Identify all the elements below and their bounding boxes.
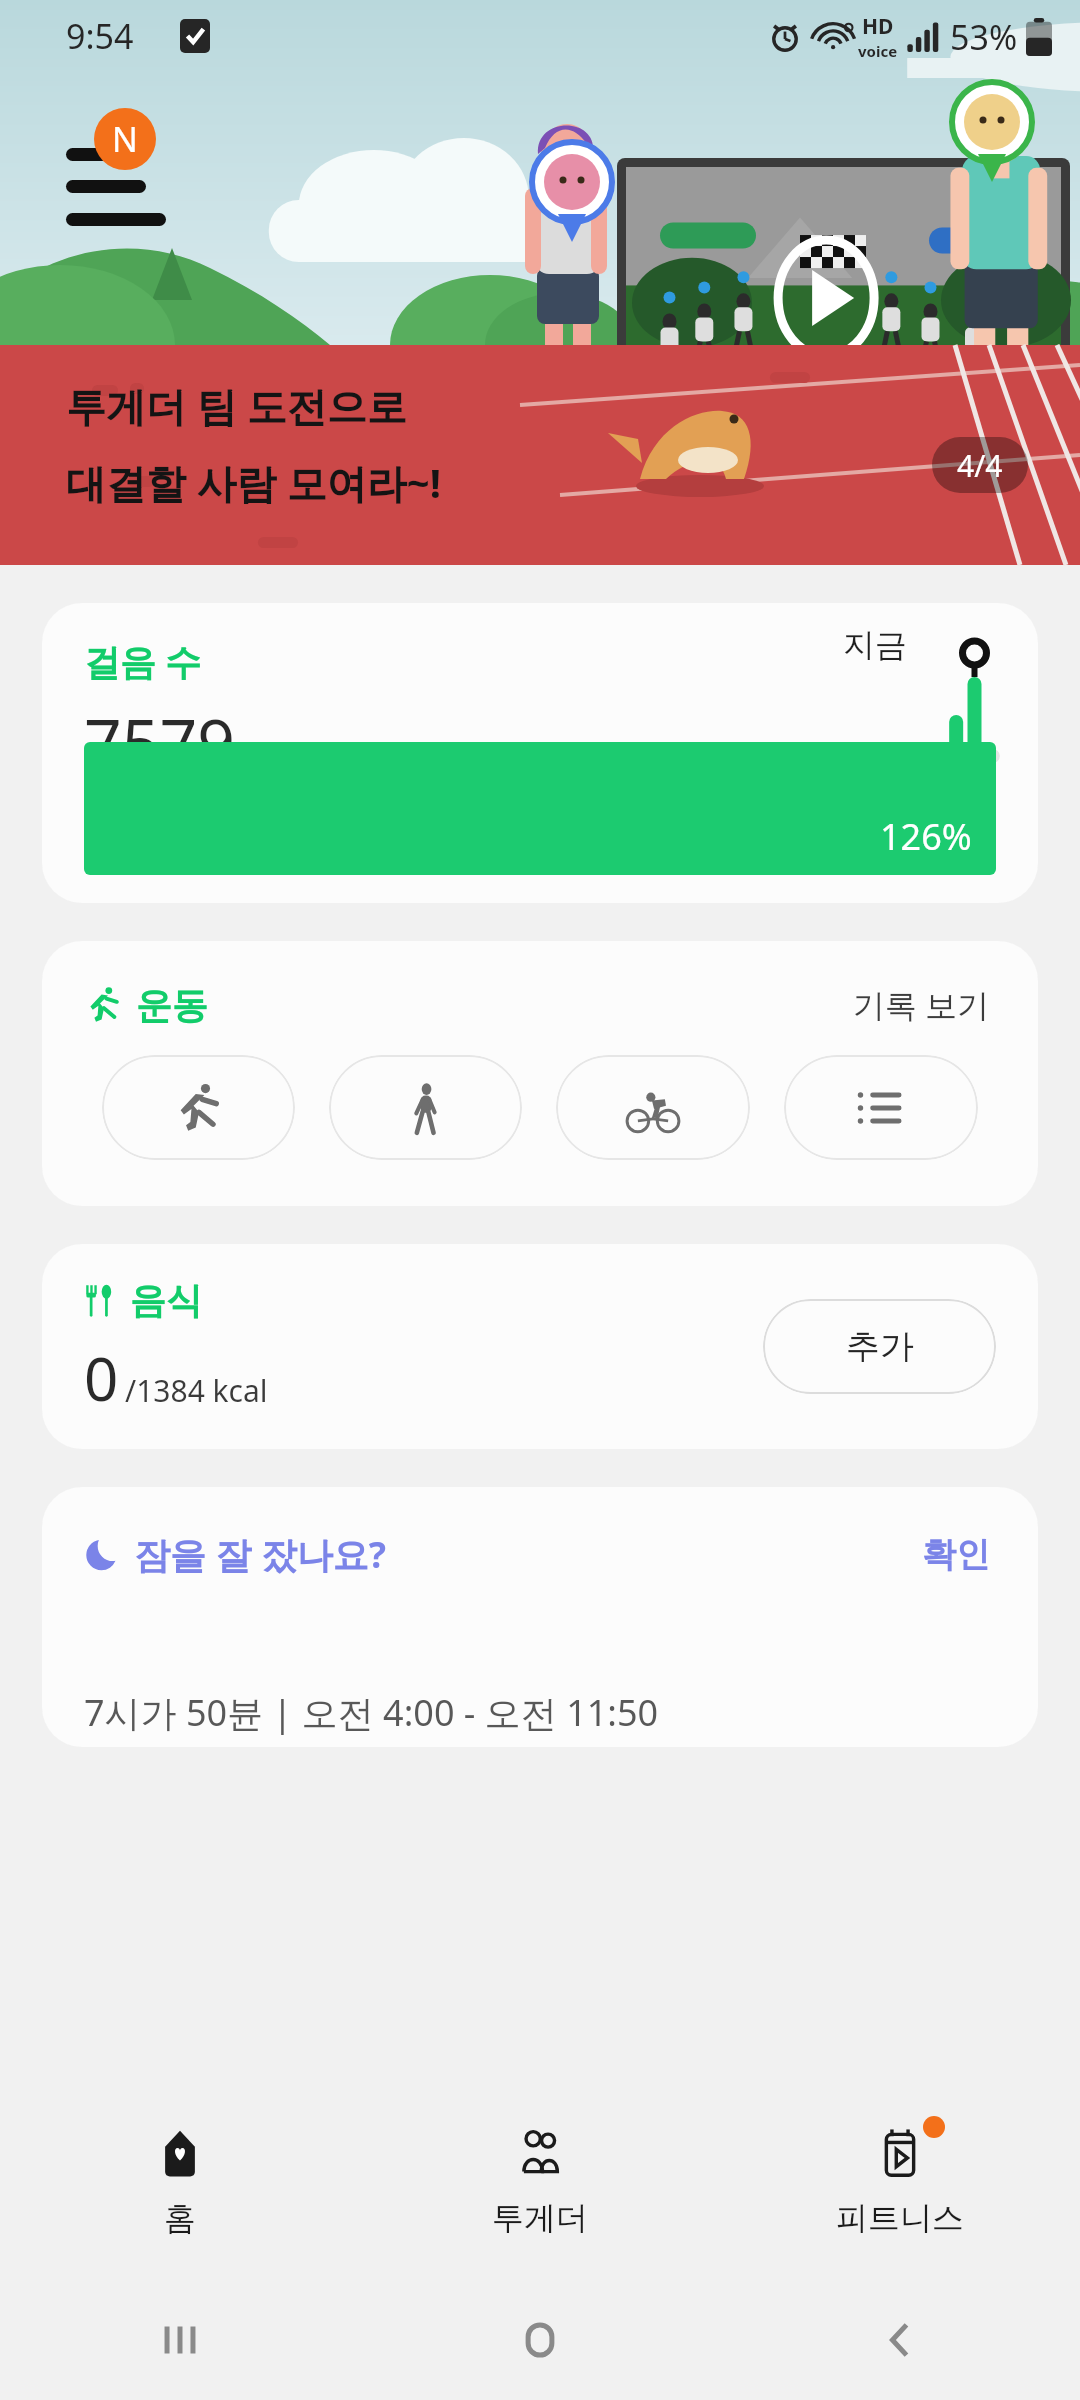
- staticText: 0: [84, 1337, 119, 1419]
- staticText: 걸음 수: [84, 637, 202, 686]
- staticText: 음식: [130, 1278, 202, 1323]
- button[interactable]: Home: [360, 2280, 720, 2400]
- staticText: 확인: [922, 1533, 990, 1576]
- button[interactable]: Walk: [329, 1055, 522, 1160]
- staticText: /6000걸음: [244, 735, 384, 776]
- staticText: 7시가 50뷴 | 오전 4:00 - 오전 11:50: [84, 1688, 659, 1737]
- staticText: N: [112, 116, 138, 162]
- staticText: /1384 kcal: [125, 1370, 268, 1411]
- staticText: 53%: [950, 14, 1018, 60]
- button[interactable]: Back: [720, 2280, 1080, 2400]
- button[interactable]: 126%: [84, 742, 996, 875]
- staticText: 7579: [84, 696, 236, 786]
- button[interactable]: 운동: [42, 941, 1038, 1206]
- staticText: 기록 보기: [853, 983, 990, 1027]
- staticText: 126%: [880, 812, 972, 861]
- button[interactable]: Cycle: [556, 1055, 750, 1160]
- button[interactable]: 음식: [42, 1244, 1038, 1449]
- button[interactable]: Run: [102, 1055, 295, 1160]
- button[interactable]: More exercises: [784, 1055, 978, 1160]
- staticText: 잠을 잘 잤나요?: [134, 1530, 386, 1579]
- staticText: voice: [858, 41, 898, 61]
- staticText: HD: [862, 12, 894, 41]
- button[interactable]: 피트니스: [720, 2080, 1080, 2280]
- button[interactable]: Menu: [48, 108, 168, 218]
- staticText: 투게더: [492, 2198, 588, 2238]
- button[interactable]: 기록 보기: [847, 977, 996, 1033]
- button[interactable]: 홈: [0, 2080, 360, 2280]
- button[interactable]: 확인: [916, 1527, 996, 1582]
- button[interactable]: 추가: [763, 1299, 996, 1394]
- staticText: 4/4: [957, 445, 1003, 486]
- staticText: 피트니스: [836, 2198, 964, 2238]
- staticText: 대결할 사람 모여라~!: [66, 455, 441, 510]
- staticText: 9:54: [66, 13, 134, 59]
- button[interactable]: 잠을 잘 잤나요?: [42, 1487, 1038, 1747]
- button[interactable]: 투게더: [360, 2080, 720, 2280]
- staticText: 운동: [136, 983, 208, 1028]
- staticText: 홈: [164, 2198, 196, 2238]
- button[interactable]: 걸음 수: [42, 603, 1038, 903]
- staticText: 지금: [843, 625, 907, 665]
- button[interactable]: 4/4: [932, 437, 1028, 493]
- staticText: 추가: [846, 1325, 914, 1368]
- staticText: 투게더 팀 도전으로: [66, 378, 407, 433]
- button[interactable]: Recents: [0, 2280, 360, 2400]
